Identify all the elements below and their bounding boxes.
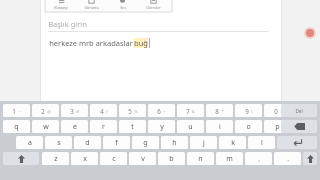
staticText: . <box>287 154 289 163</box>
staticText: g <box>143 138 148 148</box>
button[interactable]: 0 <box>264 104 291 117</box>
staticText: 1 <box>12 107 16 115</box>
button[interactable]: h <box>161 136 188 149</box>
staticText: q <box>14 122 19 132</box>
button[interactable]: Shift <box>3 152 39 165</box>
staticText: Klavyeyi <box>54 5 68 10</box>
button[interactable]: v <box>129 152 156 165</box>
staticText: x <box>83 154 87 164</box>
staticText: n <box>198 154 203 164</box>
staticText: w <box>43 122 49 132</box>
staticText: y <box>160 122 164 132</box>
button[interactable]: r <box>90 120 117 133</box>
button[interactable]: p <box>264 120 291 133</box>
staticText: % <box>134 109 138 114</box>
staticText: z <box>54 154 58 164</box>
staticText: * <box>221 109 224 114</box>
staticText: t <box>131 122 134 132</box>
button[interactable]: , <box>245 152 272 165</box>
staticText: Görüntü <box>84 5 99 10</box>
staticText: & <box>192 109 195 114</box>
staticText: ^ <box>163 109 166 114</box>
button[interactable]: Görevler <box>138 0 169 12</box>
button[interactable]: 4 <box>90 104 117 117</box>
staticText: c <box>112 154 116 164</box>
staticText: Başlık girin <box>48 19 87 29</box>
staticText: s <box>57 138 61 148</box>
staticText: m <box>226 154 233 164</box>
staticText: 4 <box>100 107 104 115</box>
staticText: 0 <box>274 107 278 115</box>
button[interactable]: Klavyeyi <box>45 0 76 12</box>
button[interactable]: Görüntü <box>76 0 107 12</box>
button[interactable]: o <box>235 120 262 133</box>
staticText: herkeze mrb arkadaslar <box>48 38 134 48</box>
staticText: Del <box>295 108 303 114</box>
button[interactable]: 7 <box>177 104 204 117</box>
button[interactable]: Geri sil <box>281 120 317 133</box>
button[interactable]: j <box>190 136 217 149</box>
button[interactable]: t <box>119 120 146 133</box>
staticText: e <box>73 122 77 132</box>
staticText: Görevler <box>146 5 161 10</box>
staticText: # <box>76 109 79 114</box>
button[interactable]: m <box>216 152 243 165</box>
staticText: o <box>246 122 251 132</box>
button[interactable]: w <box>32 120 59 133</box>
staticText: ( <box>251 109 253 114</box>
button[interactable]: Del <box>281 104 317 117</box>
staticText: d <box>85 138 90 148</box>
button[interactable]: c <box>100 152 127 165</box>
staticText: f <box>115 138 118 148</box>
button[interactable]: y <box>148 120 175 133</box>
button[interactable]: i <box>206 120 233 133</box>
button[interactable]: 5 <box>119 104 146 117</box>
button[interactable]: 3 <box>61 104 88 117</box>
staticText: b <box>169 154 174 164</box>
button[interactable]: d <box>74 136 101 149</box>
button[interactable]: Başlık girin <box>48 16 276 32</box>
staticText: ~ <box>18 109 21 114</box>
button[interactable]: . <box>274 152 301 165</box>
button[interactable]: g <box>132 136 159 149</box>
button[interactable]: u <box>177 120 204 133</box>
button[interactable]: b <box>158 152 185 165</box>
button[interactable]: n <box>187 152 214 165</box>
staticText: 6 <box>157 107 161 115</box>
button[interactable]: f <box>103 136 130 149</box>
staticText: r <box>102 122 105 132</box>
button[interactable]: Ses <box>107 0 138 12</box>
button[interactable]: e <box>61 120 88 133</box>
button[interactable]: 2 <box>32 104 59 117</box>
staticText: 7 <box>186 107 190 115</box>
button[interactable]: 8 <box>206 104 233 117</box>
button[interactable]: x <box>71 152 98 165</box>
staticText: u <box>188 122 193 132</box>
staticText: a <box>28 138 32 148</box>
button[interactable]: herkeze mrb arkadaslar <box>48 36 150 50</box>
button[interactable]: k <box>219 136 246 149</box>
staticText: buğ <box>134 38 148 48</box>
staticText: 3 <box>70 107 74 115</box>
button[interactable]: a <box>16 136 43 149</box>
staticText: 9 <box>245 107 249 115</box>
button[interactable]: l <box>248 136 275 149</box>
staticText: v <box>141 154 145 164</box>
staticText: 5 <box>128 107 132 115</box>
staticText: / <box>106 109 108 114</box>
staticText: k <box>231 138 235 148</box>
button[interactable]: Shift <box>303 152 317 165</box>
button[interactable]: Profil <box>304 27 316 39</box>
staticText: j <box>203 138 205 148</box>
staticText: h <box>172 138 177 148</box>
button[interactable]: 1 <box>3 104 30 117</box>
button[interactable]: 9 <box>235 104 262 117</box>
staticText: ) <box>280 109 282 114</box>
button[interactable]: 6 <box>148 104 175 117</box>
button[interactable]: q <box>3 120 30 133</box>
button[interactable]: s <box>45 136 72 149</box>
staticText: i <box>219 122 221 132</box>
button[interactable]: Enter <box>277 136 317 149</box>
button[interactable]: z <box>42 152 69 165</box>
staticText: p <box>275 122 280 132</box>
